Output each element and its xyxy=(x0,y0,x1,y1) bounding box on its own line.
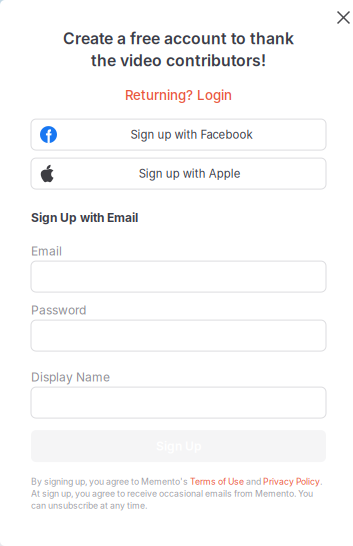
staticText: Sign up with Facebook xyxy=(130,128,252,141)
button[interactable]: Sign up with Facebook xyxy=(31,119,326,150)
staticText: and xyxy=(244,476,263,487)
button[interactable]: Sign up with Apple xyxy=(31,158,326,189)
staticText: By signing up, you agree to Memento's xyxy=(31,476,190,487)
staticText: can unsubscribe at any time. xyxy=(31,500,147,511)
staticText: Password xyxy=(31,303,86,317)
staticText: the video contributors! xyxy=(91,51,266,70)
staticText: Sign Up xyxy=(156,439,201,453)
staticText: . xyxy=(320,476,322,487)
button[interactable]: Terms of Use xyxy=(190,476,244,487)
staticText: Create a free account to thank xyxy=(63,29,294,48)
staticText: Terms of Use xyxy=(190,476,244,487)
button[interactable]: Privacy Policy xyxy=(263,476,320,487)
staticText: Sign up with Apple xyxy=(139,167,241,180)
staticText: Display Name xyxy=(31,370,110,384)
staticText: Privacy Policy xyxy=(263,476,320,487)
staticText: Sign Up with Email xyxy=(31,210,138,225)
staticText: At sign up, you agree to receive occasio… xyxy=(31,488,313,499)
staticText: Email xyxy=(31,244,62,258)
button[interactable]: Close xyxy=(332,6,353,29)
button[interactable]: Returning? Login xyxy=(31,88,326,102)
staticText: Returning? Login xyxy=(125,87,232,103)
